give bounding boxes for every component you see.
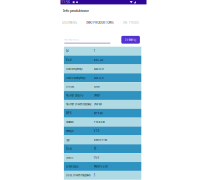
staticText: V1.0 (94, 129, 99, 133)
staticText: true (94, 156, 99, 159)
staticText: MPK001 (94, 111, 103, 115)
staticText: INV001 (94, 103, 102, 106)
staticText: Indeks (66, 85, 74, 88)
button[interactable]: INFO PRODUKTOWE (82, 19, 118, 26)
staticText: 5 (94, 174, 95, 177)
staticText: Numer Inwentarzowy (66, 103, 91, 106)
staticText: Data Aktywacji (66, 67, 83, 71)
staticText: 2023-01-01 (94, 67, 104, 71)
staticText: MPK (66, 111, 72, 115)
staticText: 10 (94, 147, 96, 150)
staticText: Ilosc Inwentaryzowa (66, 174, 90, 177)
staticText: Numer/Kod (64, 38, 79, 41)
button[interactable]: INF. PRODU (118, 19, 143, 26)
button[interactable]: Zeskanuj (121, 36, 140, 44)
staticText: Elektronika (94, 138, 107, 142)
staticText: Ilosc (66, 147, 72, 150)
staticText: Zeskanuj (125, 38, 137, 41)
staticText: LOGOWANIE (62, 21, 78, 25)
staticText: Typ (66, 138, 70, 142)
staticText: Status (66, 156, 73, 159)
staticText: 1 (94, 49, 95, 53)
staticText: Warehouse1 (94, 165, 108, 168)
staticText: SN001 (94, 94, 100, 97)
staticText: Lokalizacja (66, 165, 78, 168)
staticText: INF. PRODU (123, 21, 139, 25)
staticText: Nazwa (66, 120, 73, 124)
staticText: Produkt (94, 120, 105, 124)
staticText: 2023-12-31 (94, 76, 104, 79)
staticText: Kod (66, 58, 72, 62)
staticText: SG001 (94, 85, 100, 88)
staticText: ABC123 (94, 58, 103, 62)
staticText: Data Dezaktywacji (66, 76, 86, 79)
button[interactable]: LOGOWANIE (57, 19, 82, 26)
staticText: Numer Seryjny (66, 94, 83, 97)
staticText: INFO PRODUKTOWE (86, 21, 114, 25)
staticText: Wersja (66, 129, 73, 133)
staticText: Info produktowe (63, 8, 89, 13)
staticText: Id (66, 49, 69, 53)
staticText: 11:56 (61, 0, 70, 4)
